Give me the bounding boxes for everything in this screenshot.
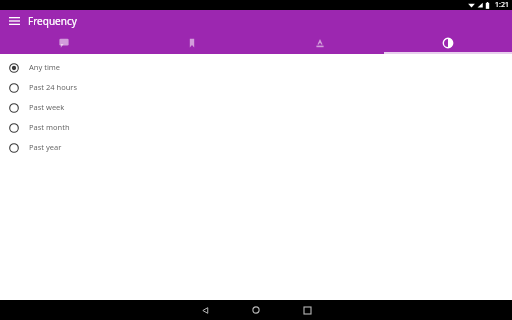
button[interactable]: Bookmarks: [128, 32, 256, 54]
staticText: Past month: [29, 122, 70, 132]
button[interactable]: Open navigation drawer: [5, 12, 23, 30]
button[interactable]: Recent apps: [290, 300, 324, 320]
button[interactable]: Messages: [0, 32, 128, 54]
staticText: Past year: [29, 142, 62, 152]
button[interactable]: Back: [188, 300, 222, 320]
staticText: Any time: [29, 62, 61, 72]
staticText: Past week: [29, 102, 65, 112]
button[interactable]: Home: [239, 300, 273, 320]
button[interactable]: Past 24 hours: [0, 77, 512, 97]
button[interactable]: Text size: [256, 32, 384, 54]
button[interactable]: Any time: [0, 57, 512, 77]
staticText: Past 24 hours: [29, 82, 78, 92]
staticText: 1:21: [495, 0, 509, 10]
staticText: Frequency: [28, 14, 77, 28]
button[interactable]: Past month: [0, 117, 512, 137]
button[interactable]: Past year: [0, 137, 512, 157]
button[interactable]: Display mode: [384, 32, 512, 54]
button[interactable]: Past week: [0, 97, 512, 117]
